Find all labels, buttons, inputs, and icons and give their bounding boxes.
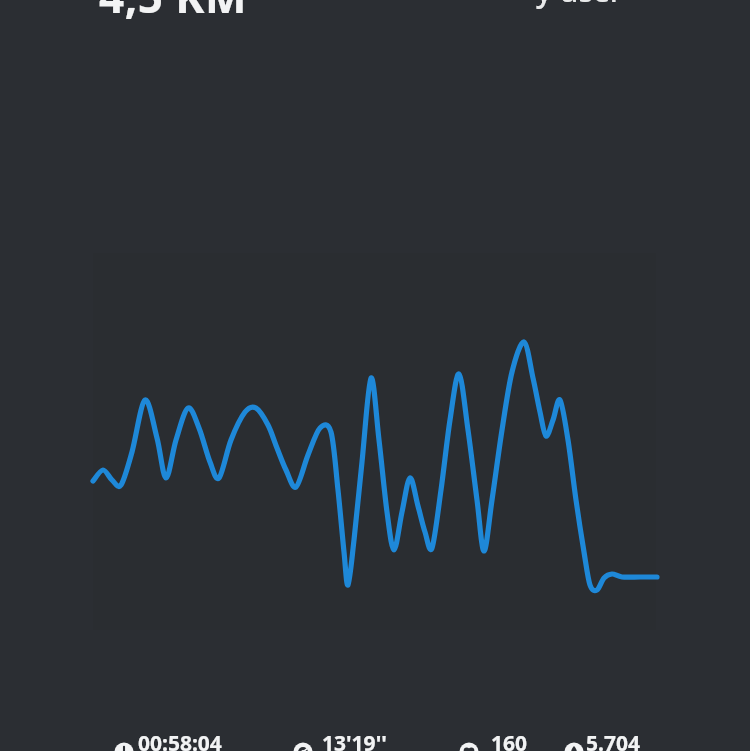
- staticText: 13'19'': [322, 729, 387, 751]
- staticText: 4,5 KM: [99, 0, 248, 26]
- button[interactable]: 4,5 KM: [99, 0, 248, 26]
- button[interactable]: 160: [491, 729, 528, 751]
- button[interactable]: 00:58:04: [138, 729, 222, 751]
- staticText: 5.704: [586, 729, 640, 751]
- button[interactable]: у usеr: [536, 0, 623, 11]
- button[interactable]: 13'19'': [322, 729, 387, 751]
- staticText: 00:58:04: [138, 729, 222, 751]
- staticText: 160: [491, 729, 528, 751]
- button[interactable]: Heart rate chart: [0, 0, 750, 751]
- button[interactable]: 5.704: [586, 729, 640, 751]
- staticText: у usеr: [536, 0, 623, 11]
